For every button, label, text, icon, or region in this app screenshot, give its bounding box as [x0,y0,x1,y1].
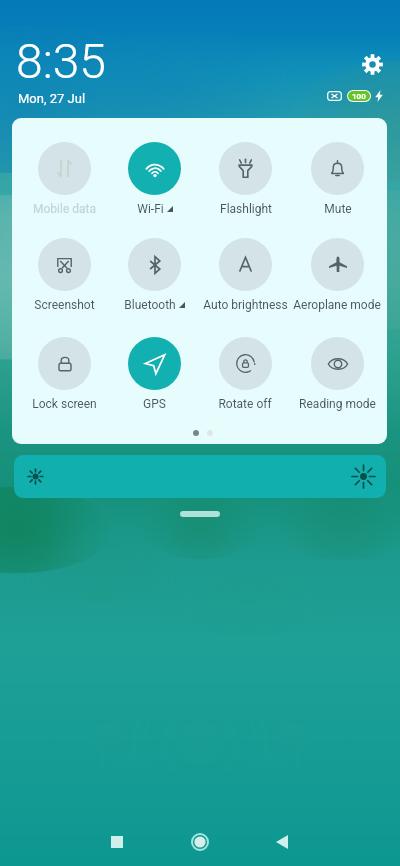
button[interactable]: Auto brightness [203,238,288,312]
staticText: GPS [143,397,166,411]
button[interactable]: Bluetooth [124,238,185,312]
staticText: Flashlight [220,202,272,216]
staticText: Rotate off [218,397,272,411]
staticText: Screenshot [34,298,95,312]
button[interactable]: Settings [358,50,386,78]
button[interactable]: Screenshot [34,238,95,312]
staticText: 100 [352,92,366,101]
button[interactable]: Wi-Fi [128,142,181,216]
button[interactable]: Aeroplane mode [293,238,381,312]
button[interactable]: Mobile data [33,142,96,216]
staticText: Mute [324,202,352,216]
staticText: Mobile data [33,202,96,216]
button[interactable]: Brightness [14,455,386,498]
staticText: Aeroplane mode [293,298,381,312]
button[interactable]: Mute [311,142,364,216]
staticText: 8:35 [16,33,106,89]
staticText: Mon, 27 Jul [18,91,86,106]
button[interactable]: Reading mode [299,337,376,411]
staticText: Auto brightness [203,298,288,312]
button[interactable]: Home [176,818,224,866]
button[interactable]: Back [258,818,306,866]
button[interactable]: Recents [93,818,141,866]
button[interactable]: Rotate off [218,337,272,411]
button[interactable]: Lock screen [32,337,97,411]
staticText: Lock screen [32,397,97,411]
staticText: Wi-Fi [137,202,164,216]
staticText: Reading mode [299,397,376,411]
staticText: Bluetooth [124,298,176,312]
button[interactable]: Flashlight [219,142,272,216]
button[interactable]: GPS [128,337,181,411]
